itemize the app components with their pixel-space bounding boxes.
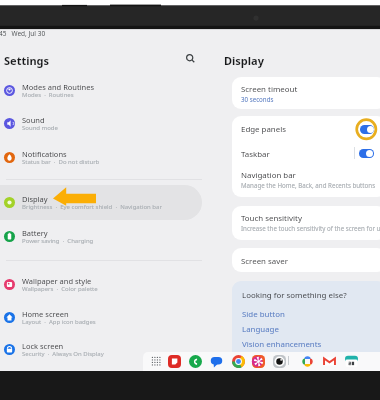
button[interactable]: Home screen (0, 300, 202, 335)
button[interactable]: Gmail (322, 354, 336, 368)
staticText: Manage the Home, Back, and Recents butto… (241, 181, 376, 189)
staticText: Screen saver (241, 256, 288, 267)
staticText: Wallpapers · Color palette (22, 285, 98, 293)
button[interactable]: Taskbar (232, 141, 380, 165)
staticText: Lock screen (22, 341, 64, 351)
staticText: Notifications (22, 149, 67, 159)
staticText: Sound (22, 115, 45, 125)
button[interactable]: Notifications (0, 140, 202, 175)
staticText: Battery (22, 228, 48, 238)
staticText: Navigation bar (241, 170, 296, 181)
button[interactable]: Chrome (231, 354, 245, 368)
button[interactable]: Sound (0, 106, 202, 141)
button[interactable]: Modes and Routines (0, 73, 202, 108)
button[interactable]: Touch sensitivity (232, 206, 380, 240)
staticText: Power saving · Charging (22, 237, 94, 245)
button[interactable]: Search (182, 50, 199, 67)
button[interactable]: Display (224, 53, 264, 68)
button[interactable]: Settings (4, 53, 50, 68)
button[interactable]: Navigation bar (232, 165, 380, 197)
button[interactable]: Language (242, 324, 279, 335)
staticText: Display (22, 194, 48, 204)
button[interactable]: Camera (272, 354, 286, 368)
staticText: Increase the touch sensitivity of the sc… (241, 224, 380, 232)
button[interactable]: Calendar (344, 354, 358, 368)
button[interactable]: Edge panels toggle (360, 125, 374, 134)
button[interactable]: Photos (300, 354, 314, 368)
staticText: Touch sensitivity (241, 213, 302, 224)
button[interactable]: Messages (209, 354, 223, 368)
staticText: 45 Wed, Jul 30 (0, 29, 46, 38)
button[interactable]: Battery (0, 219, 202, 254)
staticText: Taskbar (241, 149, 270, 160)
button[interactable]: Screen saver (232, 248, 380, 272)
button[interactable]: Phone (188, 354, 202, 368)
button[interactable]: Notes (167, 354, 181, 368)
staticText: Home screen (22, 309, 69, 319)
staticText: Modes · Routines (22, 91, 74, 99)
button[interactable]: Taskbar toggle (359, 149, 374, 158)
button[interactable]: Screen timeout (232, 77, 380, 109)
button[interactable]: Display (0, 185, 202, 220)
button[interactable]: Wallpaper and style (0, 267, 202, 302)
staticText: 30 seconds (241, 95, 274, 103)
staticText: Brightness · Eye comfort shield · Naviga… (22, 203, 162, 211)
staticText: Edge panels (241, 124, 287, 135)
staticText: Screen timeout (241, 84, 298, 95)
staticText: Status bar · Do not disturb (22, 158, 100, 166)
button[interactable]: Edge panels (232, 116, 380, 141)
button[interactable]: Lock screen (0, 332, 202, 367)
staticText: Modes and Routines (22, 82, 95, 92)
button[interactable]: Vision enhancements (242, 339, 322, 350)
staticText: Sound mode (22, 124, 58, 132)
staticText: Layout · App icon badges (22, 318, 96, 326)
staticText: Security · Always On Display (22, 350, 104, 358)
button[interactable]: All apps (149, 354, 162, 367)
button[interactable]: Side button (242, 309, 285, 320)
staticText: Wallpaper and style (22, 276, 92, 286)
staticText: Looking for something else? (242, 290, 347, 301)
button[interactable]: Gallery (251, 354, 265, 368)
